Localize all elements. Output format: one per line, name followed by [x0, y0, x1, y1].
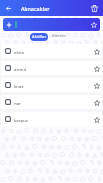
button[interactable]: Favorites	[3, 18, 100, 31]
button[interactable]: kiraz	[1, 78, 102, 92]
staticText: kiraz	[14, 83, 24, 89]
staticText: Aktifler	[32, 34, 47, 40]
button[interactable]: Back	[2, 2, 14, 14]
button[interactable]: Mark favorite	[91, 97, 102, 108]
button[interactable]: karpuz	[1, 112, 102, 126]
staticText: Alınacaklar	[21, 5, 50, 12]
staticText: Bitenler	[52, 33, 67, 41]
button[interactable]: Bitenler	[52, 33, 67, 41]
button[interactable]: Mark favorite	[91, 80, 102, 91]
staticText: karpuz	[14, 117, 28, 123]
button[interactable]: Mark favorite	[91, 114, 102, 125]
button[interactable]: Mark favorite	[91, 63, 102, 74]
button[interactable]: nar	[1, 95, 102, 109]
staticText: elma	[14, 49, 24, 55]
staticText: armut	[14, 66, 27, 72]
button[interactable]: Aktifler	[30, 33, 48, 41]
button[interactable]: armut	[1, 61, 102, 75]
staticText: nar	[14, 100, 21, 106]
button[interactable]: elma	[1, 44, 102, 58]
button[interactable]: Mark favorite	[91, 46, 102, 57]
button[interactable]: Delete list	[88, 2, 100, 14]
button[interactable]: Favorites	[89, 20, 99, 30]
